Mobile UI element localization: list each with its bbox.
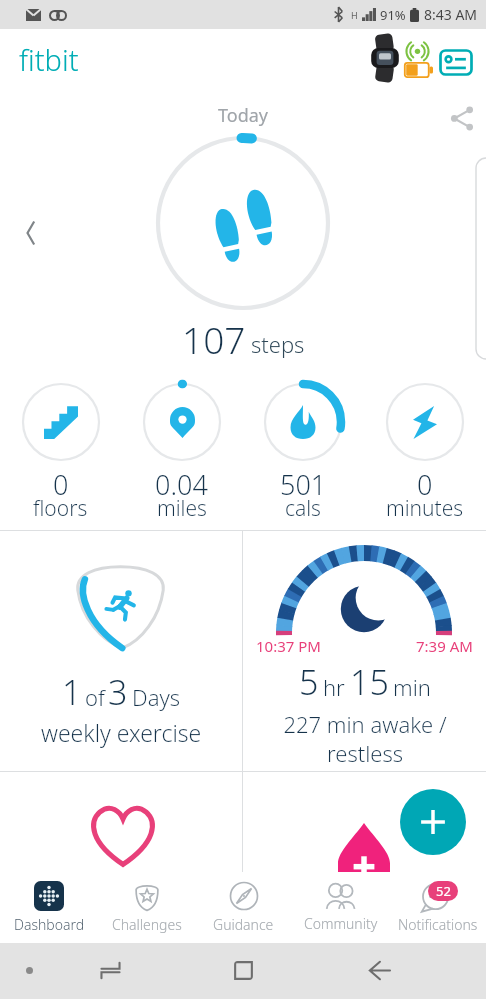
button[interactable]: 0 <box>364 381 486 532</box>
staticText: minutes <box>386 494 464 523</box>
staticText: 227 min awake / restless <box>283 709 447 768</box>
staticText: hr <box>323 672 345 702</box>
staticText: miles <box>157 494 207 523</box>
button[interactable]: Guidance <box>195 872 292 943</box>
button[interactable]: Steps today <box>154 134 332 312</box>
button[interactable]: 0 <box>0 381 121 532</box>
staticText: Notifications <box>398 915 478 934</box>
button[interactable]: 10:37 PM <box>243 531 486 771</box>
staticText: Days <box>132 682 181 712</box>
staticText: 0.04 <box>155 466 208 503</box>
staticText: 1 <box>62 669 82 715</box>
button[interactable]: Device <box>362 35 408 81</box>
staticText: 501 <box>280 466 327 503</box>
button[interactable]: Menu <box>9 950 49 990</box>
staticText: steps <box>251 329 305 359</box>
button[interactable]: Previous day <box>6 211 50 255</box>
button[interactable]: Dashboard <box>0 872 98 943</box>
staticText: 52 <box>436 882 451 900</box>
staticText: Community <box>304 914 378 933</box>
button[interactable]: Back <box>359 950 399 990</box>
staticText: 0 <box>417 466 433 503</box>
staticText: 10:37 PM <box>256 636 321 656</box>
staticText: 107 <box>182 314 246 364</box>
button[interactable]: 0.04 <box>121 381 242 532</box>
staticText: 15 <box>350 659 389 705</box>
button[interactable]: Community <box>292 872 389 943</box>
staticText: fitbit <box>19 40 79 79</box>
staticText: 3 <box>108 669 128 715</box>
staticText: weekly exercise <box>41 717 202 748</box>
staticText: cals <box>285 494 321 523</box>
staticText: Dashboard <box>14 915 85 934</box>
button[interactable]: Share <box>442 98 482 138</box>
button[interactable] <box>0 772 242 872</box>
staticText: Challenges <box>112 915 182 934</box>
staticText: 91% <box>380 6 406 24</box>
staticText: Today <box>218 103 268 128</box>
staticText: 5 <box>299 659 319 705</box>
staticText: 8:43 AM <box>424 5 478 24</box>
button[interactable]: Home <box>223 950 263 990</box>
staticText: floors <box>33 494 88 523</box>
button[interactable]: Add <box>400 789 466 855</box>
button[interactable]: Challenges <box>98 872 195 943</box>
staticText: 7:39 AM <box>416 636 473 656</box>
button[interactable]: Recents <box>90 950 130 990</box>
button[interactable]: 1 <box>0 531 242 771</box>
button[interactable]: Account <box>436 42 476 82</box>
button[interactable]: 52 <box>389 872 486 943</box>
staticText: min <box>393 672 431 702</box>
staticText: of <box>85 682 105 712</box>
button[interactable]: 501 <box>242 381 364 532</box>
staticText: 0 <box>53 466 69 503</box>
staticText: H <box>351 9 358 21</box>
button[interactable] <box>243 772 486 872</box>
staticText: Guidance <box>213 915 274 934</box>
